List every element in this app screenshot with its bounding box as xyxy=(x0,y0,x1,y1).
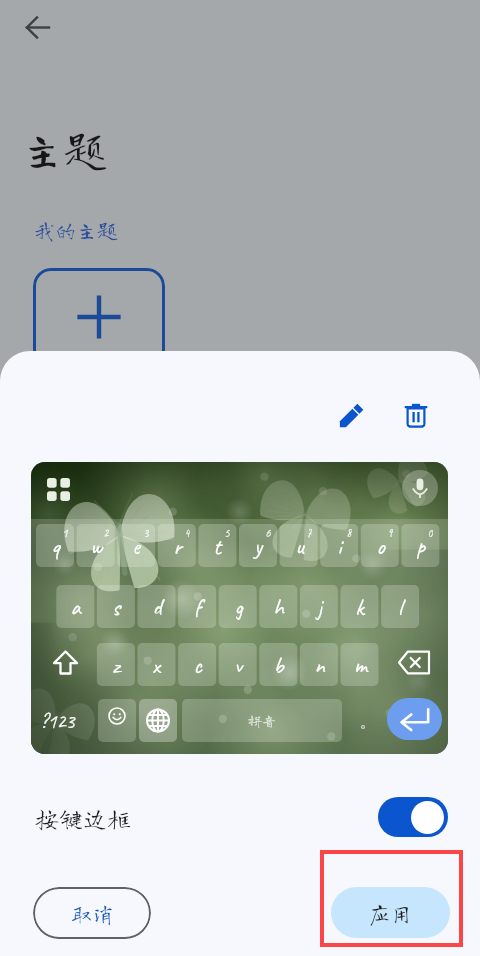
staticText: x xyxy=(152,651,160,680)
staticText: 8 xyxy=(346,525,352,538)
staticText: g xyxy=(234,593,243,622)
staticText: 9 xyxy=(387,525,393,538)
staticText: i xyxy=(337,532,342,561)
staticText: 2 xyxy=(103,525,109,538)
button[interactable]: Back xyxy=(13,3,61,51)
staticText: r xyxy=(173,532,182,561)
staticText: 7 xyxy=(306,525,312,538)
staticText: o xyxy=(376,532,385,561)
staticText: f xyxy=(194,593,201,622)
staticText: 按键边框 xyxy=(35,806,131,830)
staticText: m xyxy=(354,651,367,680)
staticText: 我的主题 xyxy=(34,220,118,241)
staticText: 主题 xyxy=(21,127,107,170)
button[interactable]: 应用 xyxy=(331,887,450,938)
staticText: 6 xyxy=(265,525,271,538)
button[interactable]: Keyboard theme preview xyxy=(31,462,448,754)
staticText: c xyxy=(193,651,202,680)
staticText: w xyxy=(90,532,102,561)
staticText: k xyxy=(355,593,364,622)
staticText: y xyxy=(254,532,262,561)
staticText: d xyxy=(152,593,162,622)
staticText: q xyxy=(51,532,60,561)
button[interactable]: 取消 xyxy=(33,887,151,939)
button[interactable]: Delete xyxy=(392,391,440,439)
staticText: 1 xyxy=(62,525,68,538)
staticText: p xyxy=(416,532,425,561)
staticText: 3 xyxy=(143,525,149,538)
staticText: 5 xyxy=(224,525,230,538)
staticText: e xyxy=(132,532,140,561)
staticText: 应用 xyxy=(368,903,413,925)
staticText: 拼音 xyxy=(248,714,276,728)
staticText: t xyxy=(213,532,221,561)
staticText: 取消 xyxy=(70,903,115,925)
staticText: a xyxy=(70,593,81,622)
button[interactable]: Edit xyxy=(327,391,375,439)
staticText: l xyxy=(398,593,402,622)
staticText: b xyxy=(273,651,284,680)
staticText: n xyxy=(314,651,325,680)
staticText: s xyxy=(112,593,120,622)
staticText: ?123 xyxy=(40,709,75,734)
staticText: 0 xyxy=(427,525,433,538)
button[interactable]: Add theme xyxy=(33,268,165,368)
staticText: z xyxy=(112,651,120,680)
staticText: h xyxy=(273,593,284,622)
staticText: j xyxy=(317,593,322,622)
staticText: 4 xyxy=(184,525,190,538)
button[interactable]: Key border toggle xyxy=(378,797,448,837)
staticText: v xyxy=(234,651,242,680)
staticText: u xyxy=(295,532,304,561)
